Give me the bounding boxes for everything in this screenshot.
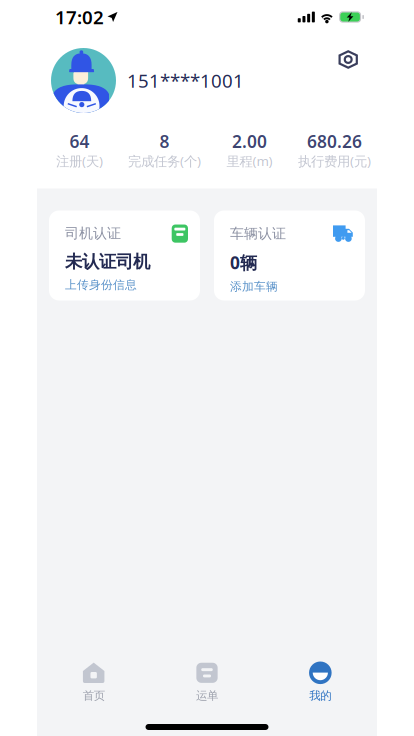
staticText: 司机认证 (65, 224, 121, 242)
staticText: 151****1001 (127, 68, 244, 93)
staticText: 添加车辆 (230, 279, 278, 294)
button[interactable]: 首页 (37, 657, 150, 708)
button[interactable]: Settings (338, 50, 358, 69)
staticText: 车辆认证 (230, 225, 286, 242)
staticText: 680.26 (307, 129, 362, 153)
staticText: 上传身份信息 (65, 277, 137, 292)
staticText: 完成任务(个) (128, 152, 201, 170)
button[interactable]: 我的 (264, 657, 377, 708)
staticText: 0辆 (230, 251, 257, 274)
staticText: 运单 (196, 689, 218, 703)
staticText: 8 (159, 129, 169, 153)
button[interactable]: 司机认证 (49, 210, 200, 300)
staticText: 注册(天) (56, 152, 103, 170)
button[interactable]: 车辆认证 (214, 210, 365, 300)
staticText: 我的 (309, 689, 331, 703)
staticText: 未认证司机 (65, 251, 150, 272)
staticText: 17:02 (55, 4, 104, 30)
staticText: 里程(m) (226, 152, 272, 170)
button[interactable]: 运单 (150, 657, 264, 708)
staticText: 64 (69, 129, 89, 153)
staticText: 首页 (83, 689, 105, 703)
staticText: 2.00 (232, 129, 267, 153)
staticText: 执行费用(元) (298, 152, 371, 170)
